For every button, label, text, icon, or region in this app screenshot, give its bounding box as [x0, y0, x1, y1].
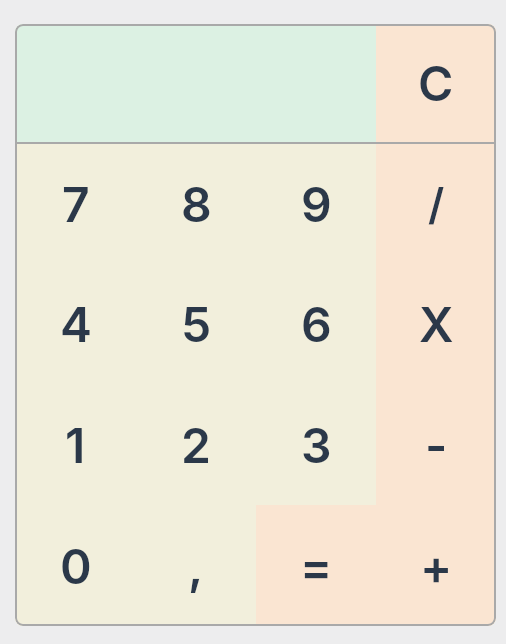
- button[interactable]: X: [376, 264, 496, 384]
- button[interactable]: ,: [136, 505, 256, 626]
- button[interactable]: 2: [136, 384, 256, 505]
- staticText: 1: [65, 416, 86, 474]
- staticText: 5: [181, 295, 212, 353]
- staticText: 4: [60, 295, 92, 353]
- button[interactable]: 9: [256, 144, 376, 264]
- button[interactable]: 5: [136, 264, 256, 384]
- staticText: 2: [181, 416, 211, 474]
- button[interactable]: 8: [136, 144, 256, 264]
- staticText: ,: [188, 537, 204, 595]
- button[interactable]: C: [376, 24, 496, 142]
- staticText: 0: [60, 537, 92, 595]
- staticText: =: [300, 537, 333, 595]
- staticText: +: [420, 537, 453, 595]
- button[interactable]: [15, 24, 376, 142]
- button[interactable]: =: [256, 505, 376, 626]
- staticText: /: [428, 178, 445, 230]
- button[interactable]: /: [376, 144, 496, 264]
- staticText: 6: [301, 295, 332, 353]
- staticText: C: [418, 54, 454, 112]
- button[interactable]: 1: [15, 384, 136, 505]
- button[interactable]: 4: [15, 264, 136, 384]
- staticText: X: [419, 295, 454, 353]
- staticText: -: [425, 416, 448, 474]
- button[interactable]: 6: [256, 264, 376, 384]
- staticText: 9: [301, 175, 332, 233]
- staticText: 7: [62, 175, 90, 233]
- button[interactable]: +: [376, 505, 496, 626]
- button[interactable]: -: [376, 384, 496, 505]
- staticText: 3: [301, 416, 332, 474]
- button[interactable]: 7: [15, 144, 136, 264]
- button[interactable]: 3: [256, 384, 376, 505]
- button[interactable]: 0: [15, 505, 136, 626]
- staticText: 8: [181, 175, 212, 233]
